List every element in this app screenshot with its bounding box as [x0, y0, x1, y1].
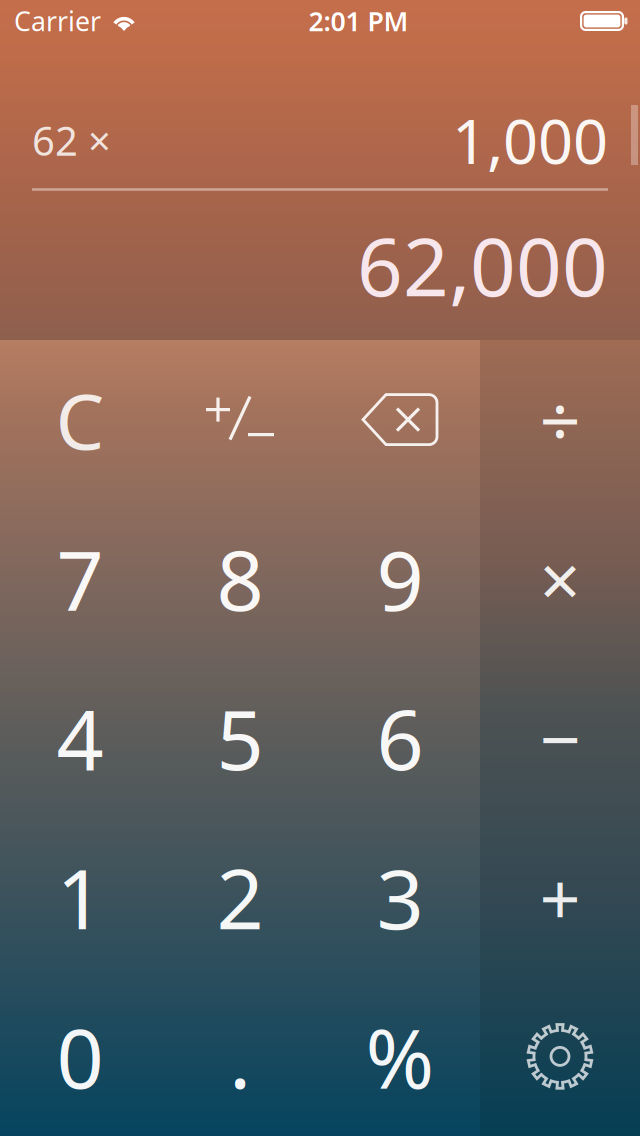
staticText: . [229, 1001, 251, 1111]
button[interactable]: 3 [320, 818, 480, 977]
button[interactable]: . [160, 977, 320, 1136]
staticText: 8 [216, 524, 263, 634]
staticText: 9 [376, 524, 423, 634]
button[interactable]: + [480, 818, 640, 977]
button[interactable]: 1 [0, 818, 160, 977]
button[interactable]: 6 [320, 658, 480, 818]
button[interactable]: 5 [160, 658, 320, 818]
button[interactable]: 8 [160, 499, 320, 658]
staticText: C [55, 368, 104, 471]
button[interactable]: Settings [480, 977, 640, 1136]
button[interactable]: 9 [320, 499, 480, 658]
button[interactable]: 0 [0, 977, 160, 1136]
staticText: 1 [56, 842, 103, 952]
staticText: 4 [56, 683, 103, 793]
button[interactable]: × [480, 499, 640, 658]
staticText: 62 × [32, 114, 111, 167]
staticText: × [539, 531, 580, 627]
button[interactable]: C [0, 340, 160, 499]
staticText: 3 [376, 842, 423, 952]
staticText: + [539, 849, 580, 945]
button[interactable]: Plus minus [160, 340, 320, 499]
staticText: − [539, 690, 580, 786]
button[interactable]: % [320, 977, 480, 1136]
staticText: 6 [376, 683, 423, 793]
staticText: Carrier [14, 3, 101, 39]
staticText: 2:01 PM [308, 3, 408, 39]
staticText: % [365, 1001, 434, 1111]
staticText: 7 [56, 524, 103, 634]
staticText: 62,000 [357, 212, 608, 318]
button[interactable]: 4 [0, 658, 160, 818]
button[interactable]: Delete [320, 340, 480, 499]
staticText: 2 [216, 842, 263, 952]
button[interactable]: 2 [160, 818, 320, 977]
button[interactable]: ÷ [480, 340, 640, 499]
button[interactable]: − [480, 658, 640, 818]
staticText: 1,000 [452, 99, 608, 181]
staticText: ÷ [539, 372, 580, 467]
staticText: 0 [56, 1001, 103, 1111]
staticText: 5 [216, 683, 263, 793]
button[interactable]: 7 [0, 499, 160, 658]
